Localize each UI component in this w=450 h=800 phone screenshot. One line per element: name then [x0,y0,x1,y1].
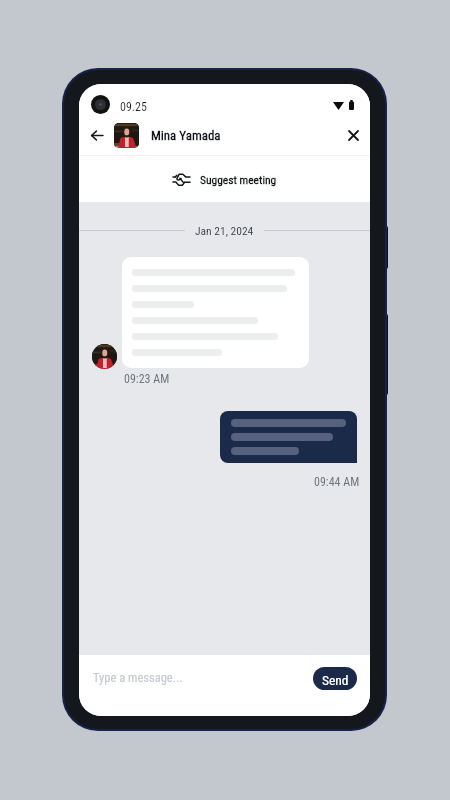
button[interactable]: Close [337,116,370,155]
button[interactable]: Send [313,667,357,690]
staticText: 09:44 AM [314,475,360,489]
button[interactable]: Suggest meeting [79,156,370,202]
button[interactable]: Back [79,116,114,155]
staticText: Send [322,672,349,688]
staticText: 09:23 AM [124,372,170,386]
staticText: Suggest meeting [200,173,277,186]
staticText: Jan 21, 2024 [195,224,254,237]
staticText: Mina Yamada [151,128,221,143]
staticText: 09.25 [120,100,147,114]
button[interactable] [220,411,357,463]
staticText: Type a message... [93,670,183,685]
button[interactable] [122,257,309,368]
